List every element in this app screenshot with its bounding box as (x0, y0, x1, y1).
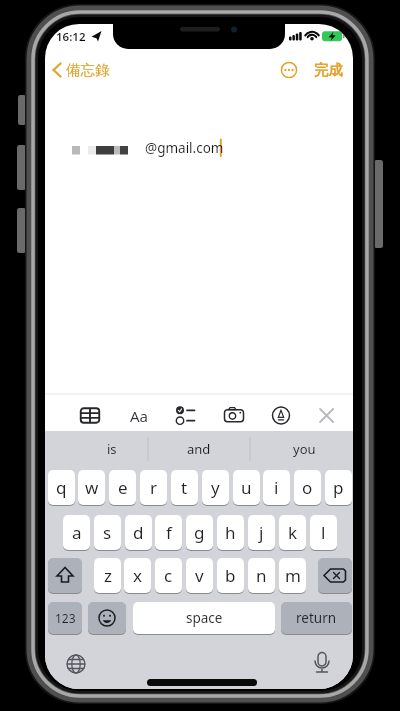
staticText: t (181, 476, 188, 499)
button[interactable]: o (294, 470, 321, 505)
button[interactable]: Aa (125, 405, 153, 426)
button[interactable] (318, 558, 352, 593)
button[interactable]: x (124, 558, 151, 593)
staticText: space (186, 609, 223, 627)
button[interactable]: b (217, 558, 244, 593)
button[interactable]: w (78, 470, 105, 505)
button[interactable]: 備忘錄 (64, 61, 112, 79)
button[interactable]: t (171, 470, 198, 505)
staticText: e (118, 476, 128, 499)
staticText: and (187, 440, 211, 458)
staticText: z (104, 564, 112, 587)
button[interactable] (280, 61, 298, 79)
button[interactable] (271, 405, 291, 426)
button[interactable]: f (155, 515, 182, 550)
staticText: f (166, 521, 172, 544)
button[interactable]: v (186, 558, 213, 593)
button[interactable]: m (279, 558, 306, 593)
button[interactable]: 完成 (311, 61, 345, 79)
staticText: a (72, 521, 82, 544)
staticText: o (302, 476, 313, 499)
staticText: you (293, 440, 316, 458)
staticText: q (56, 476, 67, 499)
button[interactable]: is (92, 439, 132, 459)
button[interactable] (88, 602, 126, 634)
button[interactable]: you (284, 439, 324, 459)
staticText: v (195, 564, 204, 587)
staticText: b (225, 564, 236, 587)
button[interactable]: k (279, 515, 306, 550)
button[interactable]: q (48, 470, 75, 505)
staticText: 16:12 (56, 29, 86, 45)
button[interactable]: a (63, 515, 90, 550)
button[interactable] (174, 405, 195, 426)
button[interactable] (223, 405, 245, 426)
button[interactable] (66, 654, 86, 674)
button[interactable]: g (186, 515, 213, 550)
staticText: 123 (55, 610, 76, 626)
staticText: 完成 (314, 61, 343, 79)
staticText: return (296, 609, 337, 627)
button[interactable]: space (133, 602, 275, 634)
button[interactable]: p (325, 470, 352, 505)
button[interactable]: e (109, 470, 136, 505)
button[interactable]: h (217, 515, 244, 550)
button[interactable]: r (140, 470, 167, 505)
button[interactable]: u (233, 470, 260, 505)
staticText: g (194, 521, 205, 544)
staticText: i (274, 476, 279, 499)
button[interactable] (48, 558, 82, 593)
staticText: n (256, 564, 267, 587)
button[interactable]: and (179, 439, 219, 459)
staticText: x (133, 564, 142, 587)
button[interactable]: z (94, 558, 121, 593)
button[interactable]: n (248, 558, 275, 593)
button[interactable]: return (281, 602, 352, 634)
button[interactable]: 123 (48, 602, 82, 634)
staticText: 備忘錄 (66, 61, 110, 79)
staticText: s (103, 521, 112, 544)
staticText: p (333, 476, 344, 499)
button[interactable]: j (248, 515, 275, 550)
staticText: m (285, 564, 301, 587)
staticText: Aa (130, 406, 149, 426)
button[interactable] (80, 405, 100, 426)
staticText: @gmail.com (145, 139, 224, 157)
staticText: k (288, 521, 298, 544)
button[interactable]: s (94, 515, 121, 550)
staticText: l (321, 521, 326, 544)
button[interactable]: c (155, 558, 182, 593)
staticText: r (150, 476, 158, 499)
staticText: is (107, 440, 117, 458)
staticText: c (164, 564, 173, 587)
staticText: u (241, 476, 252, 499)
staticText: d (133, 521, 144, 544)
button[interactable] (312, 651, 332, 673)
staticText: y (211, 476, 220, 499)
button[interactable] (317, 405, 337, 426)
button[interactable]: l (310, 515, 337, 550)
staticText: j (259, 521, 264, 544)
button[interactable]: i (263, 470, 290, 505)
staticText: h (225, 521, 236, 544)
staticText: w (85, 476, 99, 499)
button[interactable]: d (125, 515, 152, 550)
button[interactable]: y (202, 470, 229, 505)
